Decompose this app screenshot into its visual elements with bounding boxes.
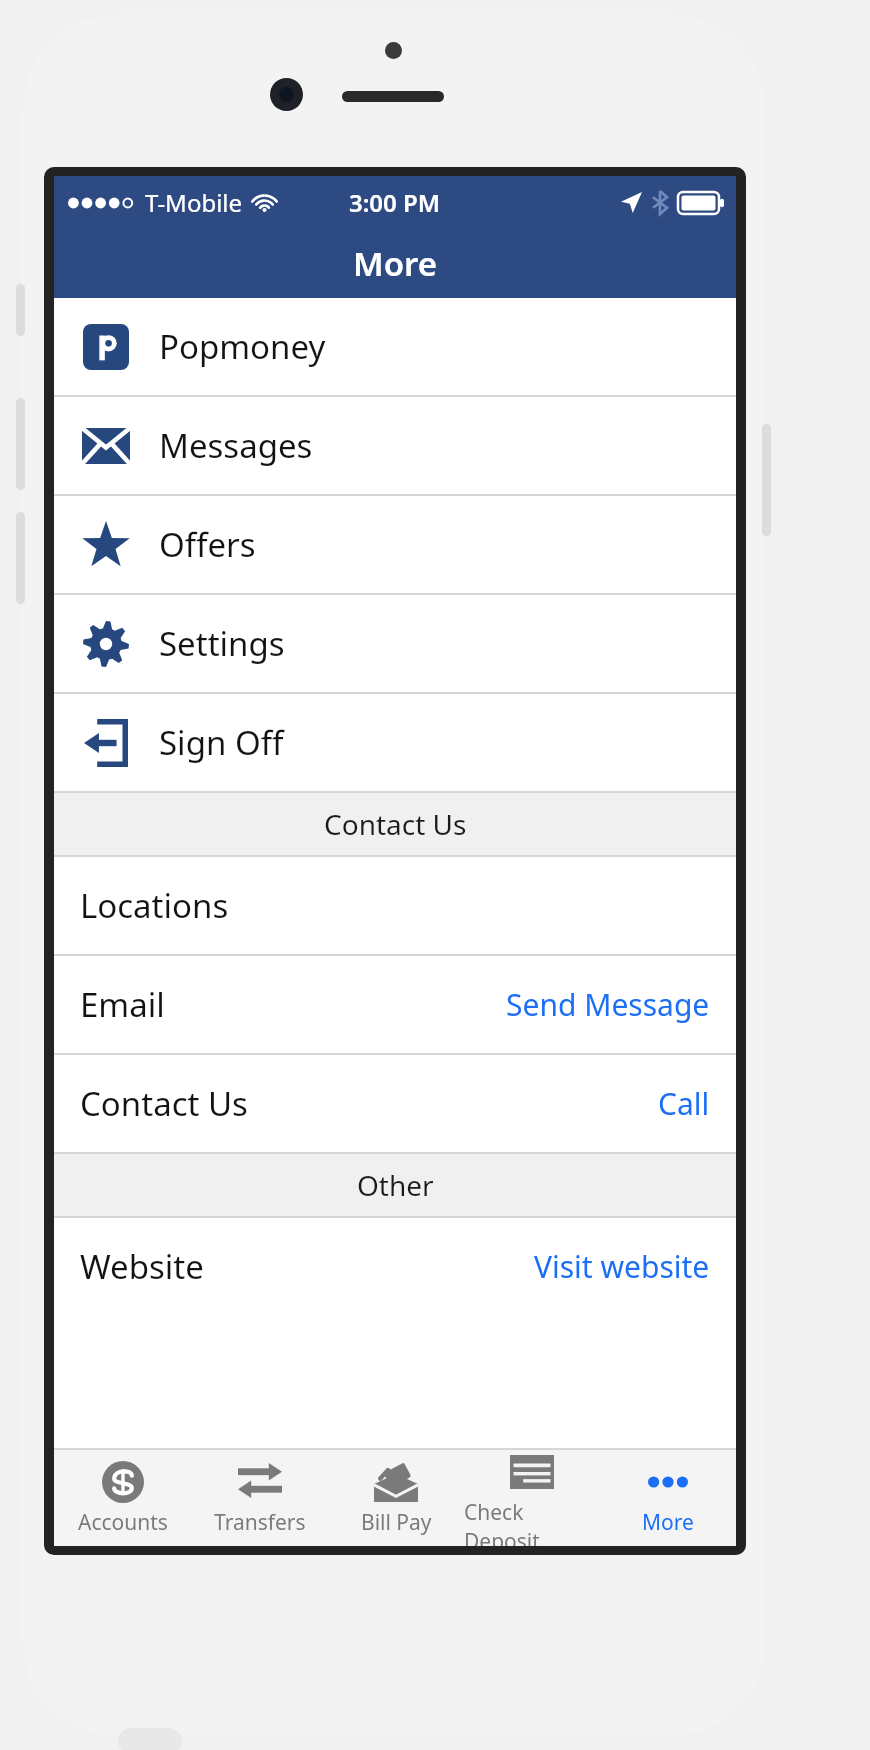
staticText: Messages — [159, 423, 313, 468]
button[interactable]: Settings — [54, 595, 736, 692]
button[interactable]: Contact Us — [54, 1055, 736, 1152]
button[interactable]: Bill Pay — [328, 1450, 464, 1546]
staticText: 3:00 PM — [349, 186, 441, 219]
staticText: T-Mobile — [145, 186, 243, 219]
staticText: Email — [80, 982, 165, 1027]
staticText: Send Message — [506, 984, 710, 1025]
staticText: More — [353, 241, 437, 286]
staticText: Visit website — [534, 1246, 710, 1287]
staticText: Offers — [159, 522, 256, 567]
button[interactable]: Website — [54, 1218, 736, 1315]
staticText: Contact Us — [80, 1081, 248, 1126]
button[interactable]: Transfers — [191, 1450, 328, 1546]
button[interactable]: Email — [54, 956, 736, 1053]
staticText: Other — [357, 1166, 434, 1204]
staticText: Call — [658, 1083, 710, 1124]
staticText: Check Deposit — [464, 1498, 600, 1546]
button[interactable]: Locations — [54, 857, 736, 954]
button[interactable]: More — [600, 1450, 736, 1546]
staticText: Sign Off — [159, 720, 284, 765]
button[interactable]: Check Deposit — [464, 1450, 600, 1546]
button[interactable]: Popmoney — [54, 298, 736, 395]
button[interactable]: Accounts — [54, 1450, 191, 1546]
staticText: More — [642, 1508, 694, 1537]
staticText: Website — [80, 1244, 204, 1289]
staticText: Bill Pay — [361, 1508, 432, 1537]
staticText: Transfers — [214, 1508, 306, 1537]
button[interactable]: Offers — [54, 496, 736, 593]
staticText: Popmoney — [159, 324, 326, 369]
staticText: Accounts — [78, 1508, 168, 1537]
button[interactable]: Messages — [54, 397, 736, 494]
staticText: Contact Us — [324, 805, 467, 843]
staticText: Locations — [80, 883, 229, 928]
button[interactable]: Sign Off — [54, 694, 736, 791]
staticText: Settings — [159, 621, 285, 666]
